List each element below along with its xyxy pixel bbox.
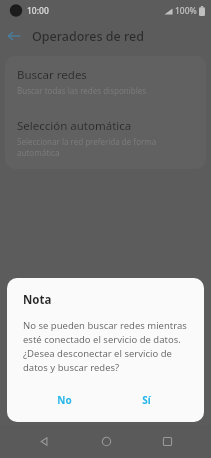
button[interactable]: Home [89, 425, 123, 458]
staticText: Buscar redes [17, 67, 87, 83]
button[interactable]: Back [0, 22, 28, 50]
staticText: Selección automática [17, 118, 132, 134]
button[interactable]: Back [27, 425, 61, 458]
staticText: No se pueden buscar redes mientras esté … [23, 319, 188, 374]
staticText: 100% [175, 5, 197, 17]
staticText: Operadores de red [32, 28, 144, 45]
button[interactable]: Selección automática [5, 107, 206, 169]
staticText: Buscar todas las redes disponibles [17, 85, 147, 96]
staticText: Nota [23, 292, 52, 308]
staticText: No [57, 393, 72, 407]
button[interactable]: Sí [105, 388, 188, 412]
button[interactable]: No [23, 388, 105, 412]
button[interactable]: Buscar redes [5, 56, 206, 107]
staticText: Sí [142, 393, 151, 407]
staticText: Seleccionar la red preferida de forma au… [17, 136, 194, 158]
staticText: 10:00 [27, 5, 49, 17]
button[interactable]: Recent apps [150, 425, 184, 458]
